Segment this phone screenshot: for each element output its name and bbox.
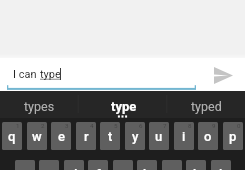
button[interactable]: types [0, 91, 77, 118]
staticText: types [24, 99, 55, 114]
button[interactable]: e [51, 122, 71, 150]
staticText: k [193, 167, 200, 170]
button[interactable]: t [100, 122, 120, 150]
button[interactable]: y [125, 122, 145, 150]
button[interactable]: type [77, 91, 166, 118]
button[interactable]: h [137, 160, 157, 170]
staticText: d [70, 167, 78, 170]
staticText: q [8, 129, 16, 144]
button[interactable]: u [149, 122, 169, 150]
button[interactable]: Send [205, 58, 243, 91]
staticText: 4 [90, 122, 94, 129]
staticText: 2 [41, 122, 45, 129]
staticText: I can [13, 68, 40, 81]
staticText: u [155, 129, 163, 144]
staticText: r [84, 129, 89, 144]
staticText: 8 [188, 122, 192, 129]
button[interactable]: s [39, 160, 59, 170]
button[interactable]: d [64, 160, 84, 170]
staticText: 7 [163, 122, 167, 129]
button[interactable]: k [186, 160, 206, 170]
staticText: type [40, 68, 61, 81]
staticText: 3 [65, 122, 69, 129]
staticText: 0 [237, 122, 241, 129]
staticText: y [132, 129, 139, 144]
staticText: t [108, 129, 113, 144]
button[interactable]: l [211, 160, 231, 170]
staticText: type [111, 99, 137, 114]
button[interactable]: a [15, 160, 35, 170]
button[interactable]: I can [13, 68, 61, 81]
button[interactable]: p [223, 122, 243, 150]
staticText: e [58, 129, 65, 144]
staticText: typed [191, 99, 222, 114]
staticText: f [96, 167, 101, 170]
staticText: 5 [114, 122, 118, 129]
button[interactable]: typed [166, 91, 245, 118]
staticText: l [219, 167, 223, 170]
button[interactable]: i [174, 122, 194, 150]
button[interactable]: o [198, 122, 218, 150]
staticText: 1 [16, 122, 20, 129]
staticText: 6 [139, 122, 143, 129]
staticText: p [229, 129, 237, 144]
staticText: 9 [212, 122, 216, 129]
button[interactable]: w [27, 122, 47, 150]
staticText: o [204, 129, 212, 144]
button[interactable]: j [162, 160, 182, 170]
button[interactable]: q [2, 122, 22, 150]
staticText: i [182, 129, 186, 144]
button[interactable]: g [113, 160, 133, 170]
button[interactable]: r [76, 122, 96, 150]
staticText: h [143, 167, 151, 170]
button[interactable]: f [88, 160, 108, 170]
staticText: w [32, 129, 42, 144]
